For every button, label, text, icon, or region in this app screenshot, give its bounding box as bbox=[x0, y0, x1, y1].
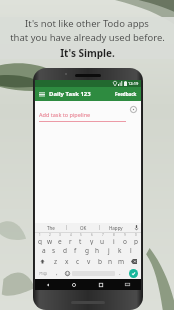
staticText: i bbox=[113, 237, 115, 245]
staticText: c bbox=[76, 257, 80, 266]
staticText: , bbox=[56, 269, 58, 277]
button[interactable]: Switch to symbols bbox=[35, 267, 51, 279]
staticText: 8 bbox=[113, 233, 115, 237]
button[interactable]: 2 bbox=[45, 233, 55, 245]
button[interactable]: z bbox=[50, 256, 61, 267]
button[interactable]: 1 bbox=[35, 233, 45, 245]
staticText: q bbox=[38, 237, 42, 245]
button[interactable]: 9 bbox=[119, 233, 130, 245]
button[interactable]: 8 bbox=[108, 233, 119, 245]
staticText: 9 bbox=[124, 233, 126, 237]
button[interactable]: g bbox=[81, 245, 92, 256]
button[interactable]: Send bbox=[125, 267, 141, 279]
staticText: 7 bbox=[102, 233, 104, 237]
button[interactable]: 6 bbox=[86, 233, 97, 245]
staticText: d bbox=[63, 246, 67, 255]
button[interactable]: x bbox=[61, 256, 72, 267]
staticText: It's Simple. bbox=[60, 46, 115, 59]
button[interactable]: Happy bbox=[100, 223, 132, 232]
button[interactable]: 5 bbox=[75, 233, 86, 245]
staticText: b bbox=[98, 257, 102, 266]
staticText: 3 bbox=[59, 233, 61, 237]
button[interactable]: 0 bbox=[130, 233, 141, 245]
staticText: j bbox=[108, 246, 110, 255]
staticText: a bbox=[42, 246, 46, 255]
staticText: n bbox=[108, 257, 113, 266]
staticText: It's not like other Todo apps bbox=[25, 17, 149, 30]
staticText: 5 bbox=[80, 233, 82, 237]
staticText: u bbox=[100, 237, 105, 245]
button[interactable]: v bbox=[83, 256, 94, 267]
button[interactable]: , bbox=[51, 267, 62, 279]
button[interactable]: n bbox=[105, 256, 116, 267]
staticText: OK bbox=[80, 225, 87, 231]
button[interactable]: The bbox=[35, 223, 66, 232]
button[interactable]: k bbox=[114, 245, 125, 256]
button[interactable]: Feedback bbox=[111, 91, 141, 97]
button[interactable]: f bbox=[70, 245, 81, 256]
staticText: y bbox=[90, 237, 94, 245]
staticText: t bbox=[79, 237, 82, 245]
staticText: that you have already used before. bbox=[10, 31, 165, 44]
button[interactable]: 4 bbox=[65, 233, 75, 245]
staticText: x bbox=[65, 257, 69, 266]
staticText: . bbox=[119, 269, 121, 277]
staticText: Add task to pipeline bbox=[39, 111, 91, 118]
staticText: ?1☺ bbox=[39, 271, 48, 276]
staticText: s bbox=[52, 246, 56, 255]
staticText: l bbox=[130, 246, 132, 255]
button[interactable]: Change keyboard bbox=[114, 279, 141, 290]
button[interactable]: Back bbox=[35, 279, 61, 290]
staticText: The bbox=[47, 225, 55, 231]
staticText: f bbox=[74, 246, 77, 255]
staticText: z bbox=[54, 257, 58, 266]
button[interactable]: 3 bbox=[55, 233, 65, 245]
button[interactable]: Home bbox=[61, 279, 87, 290]
button[interactable]: OK bbox=[67, 223, 99, 232]
staticText: w bbox=[47, 237, 53, 245]
button[interactable]: c bbox=[72, 256, 83, 267]
button[interactable]: a bbox=[39, 245, 49, 256]
staticText: p bbox=[134, 237, 138, 245]
staticText: Happy bbox=[109, 225, 123, 231]
staticText: 2 bbox=[49, 233, 51, 237]
staticText: 0 bbox=[135, 233, 137, 237]
staticText: r bbox=[69, 237, 72, 245]
button[interactable]: Backspace bbox=[127, 256, 141, 267]
button[interactable]: Shift bbox=[35, 256, 50, 267]
staticText: m bbox=[118, 257, 125, 266]
button[interactable]: m bbox=[116, 256, 127, 267]
staticText: Daily Task 123 bbox=[49, 90, 91, 98]
staticText: 4 bbox=[70, 233, 72, 237]
staticText: Feedback bbox=[115, 91, 137, 97]
staticText: 1 bbox=[39, 233, 41, 237]
staticText: k bbox=[118, 246, 122, 255]
button[interactable]: Recent apps bbox=[87, 279, 114, 290]
staticText: e bbox=[58, 237, 62, 245]
button[interactable]: Open navigation menu bbox=[35, 92, 49, 97]
button[interactable]: s bbox=[49, 245, 59, 256]
button[interactable]: Emoji bbox=[62, 267, 72, 279]
button[interactable]: Voice input bbox=[132, 223, 141, 232]
button[interactable]: h bbox=[92, 245, 103, 256]
staticText: g bbox=[85, 246, 89, 255]
button[interactable]: d bbox=[59, 245, 70, 256]
button[interactable]: j bbox=[103, 245, 114, 256]
staticText: 6 bbox=[91, 233, 93, 237]
staticText: v bbox=[87, 257, 91, 266]
staticText: h bbox=[95, 246, 100, 255]
staticText: 12:19 bbox=[128, 81, 139, 86]
button[interactable]: . bbox=[115, 267, 125, 279]
button[interactable]: l bbox=[125, 245, 136, 256]
button[interactable]: b bbox=[94, 256, 105, 267]
button[interactable]: 7 bbox=[97, 233, 108, 245]
button[interactable]: Task info bbox=[129, 105, 138, 114]
staticText: o bbox=[123, 237, 127, 245]
